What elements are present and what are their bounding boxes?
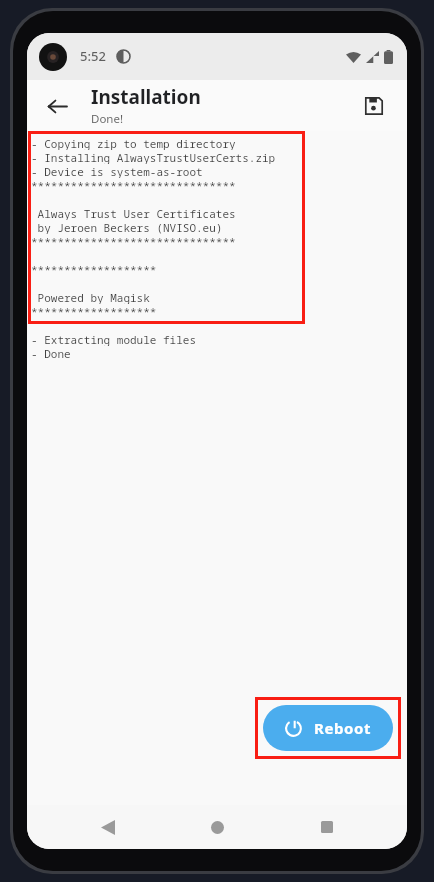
- staticText: - Installing AlwaysTrustUserCerts.zip: [31, 150, 276, 164]
- staticText: Reboot: [314, 718, 372, 738]
- staticText: *******************************: [31, 178, 236, 192]
- staticText: Powered by Magisk: [31, 290, 150, 304]
- staticText: - Done: [31, 346, 71, 360]
- button[interactable]: Recent apps: [298, 805, 356, 849]
- button[interactable]: Save log: [354, 86, 394, 126]
- staticText: Done!: [91, 111, 124, 127]
- staticText: 5:52: [80, 47, 106, 65]
- staticText: *******************: [31, 304, 157, 318]
- staticText: by Jeroen Beckers (NVISO.eu): [31, 220, 223, 234]
- staticText: - Copying zip to temp directory: [31, 136, 236, 150]
- staticText: Always Trust User Certificates: [31, 206, 236, 220]
- staticText: - Extracting module files: [31, 332, 196, 346]
- button[interactable]: Reboot: [263, 705, 393, 751]
- staticText: *******************: [31, 262, 157, 276]
- button[interactable]: Back: [79, 805, 137, 849]
- staticText: Installation: [91, 84, 201, 110]
- staticText: - Device is system-as-root: [31, 164, 203, 178]
- button[interactable]: Back: [35, 84, 79, 128]
- button[interactable]: Home: [188, 805, 246, 849]
- staticText: *******************************: [31, 234, 236, 248]
